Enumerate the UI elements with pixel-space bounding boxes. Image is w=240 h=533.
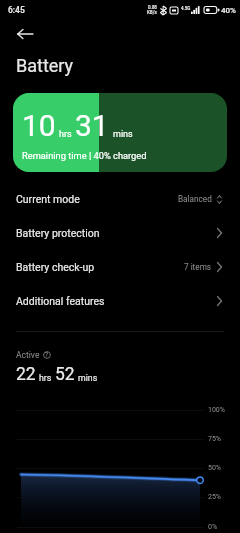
staticText: 0.08 <box>148 5 157 10</box>
staticText: Battery <box>16 55 74 76</box>
staticText: 0% <box>208 523 218 531</box>
button[interactable]: Additional features <box>0 284 240 318</box>
button[interactable]: Help <box>43 351 51 359</box>
staticText: 7 items <box>184 262 212 272</box>
staticText: Remaining time | 40% charged <box>22 150 147 161</box>
staticText: 50% <box>208 464 221 472</box>
staticText: 75% <box>208 435 221 443</box>
staticText: mins <box>78 373 98 383</box>
staticText: 25% <box>208 493 221 501</box>
staticText: hrs <box>39 373 52 383</box>
staticText: 4.5G <box>181 6 191 11</box>
staticText: Current mode <box>16 193 80 205</box>
staticText: hrs <box>59 129 72 140</box>
staticText: Battery protection <box>16 227 100 239</box>
staticText: 40% <box>221 6 236 15</box>
staticText: Additional features <box>16 295 105 307</box>
button[interactable]: Battery check-up <box>0 250 240 284</box>
staticText: 22 <box>16 364 36 385</box>
staticText: 10 <box>22 108 56 143</box>
staticText: Active <box>16 350 40 360</box>
button[interactable]: 10 <box>13 93 227 172</box>
staticText: Battery check-up <box>16 261 95 273</box>
staticText: 31 <box>75 108 109 143</box>
staticText: KB/s <box>147 10 157 15</box>
staticText: 6:45 <box>8 5 25 15</box>
staticText: Balanced <box>178 194 212 204</box>
button[interactable]: Back <box>11 20 39 48</box>
button[interactable]: Battery protection <box>0 216 240 250</box>
staticText: ? <box>45 351 49 359</box>
button[interactable]: Current mode <box>0 182 240 216</box>
staticText: 100% <box>208 406 225 414</box>
staticText: 52 <box>55 364 75 385</box>
staticText: mins <box>113 129 133 140</box>
